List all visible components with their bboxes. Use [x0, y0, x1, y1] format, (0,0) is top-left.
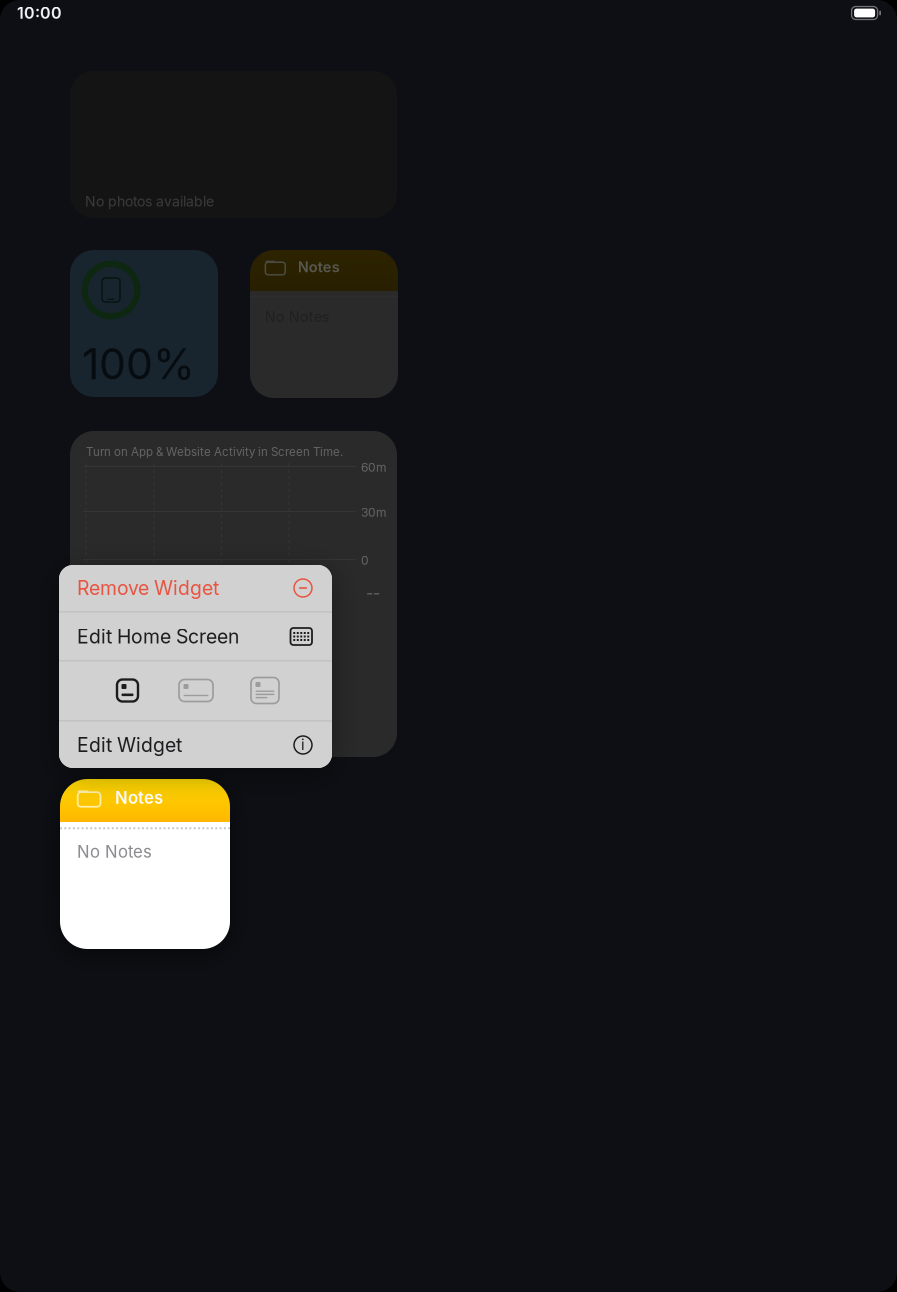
staticText: No photos available: [85, 193, 214, 210]
staticText: Edit Home Screen: [77, 625, 239, 648]
staticText: i: [301, 736, 305, 754]
staticText: Notes: [298, 258, 340, 276]
staticText: 100%: [82, 338, 195, 390]
button[interactable]: Screen Time widget: [70, 431, 397, 757]
staticText: Turn on App & Website Activity in Screen…: [86, 445, 343, 459]
button[interactable]: Medium widget size: [179, 679, 213, 701]
button[interactable]: Edit Home Screen: [59, 612, 332, 660]
staticText: 0: [361, 553, 369, 567]
button[interactable]: Photos widget: [70, 71, 397, 218]
button[interactable]: Edit Widget: [59, 721, 332, 768]
staticText: Remove Widget: [77, 576, 219, 600]
button[interactable]: Small widget size: [117, 679, 138, 701]
staticText: Notes: [115, 788, 163, 808]
staticText: 60m: [361, 460, 387, 474]
button[interactable]: Large widget size: [251, 677, 279, 703]
button[interactable]: Battery widget, 100 percent: [70, 250, 218, 397]
button[interactable]: Remove Widget: [59, 564, 332, 611]
button[interactable]: Notes widget: [250, 250, 398, 398]
button[interactable]: Notes widget: [60, 779, 230, 949]
staticText: 30m: [361, 505, 387, 519]
staticText: Edit Widget: [77, 733, 182, 757]
staticText: No Notes: [265, 308, 330, 325]
staticText: No Notes: [77, 841, 152, 862]
staticText: 10:00: [17, 3, 62, 23]
staticText: --: [366, 583, 380, 602]
